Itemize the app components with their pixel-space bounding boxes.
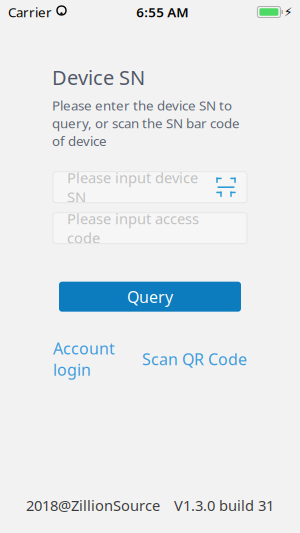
staticText: Account login — [53, 338, 115, 380]
staticText: V1.3.0 build 31 — [174, 495, 274, 515]
staticText: Please input device SN — [67, 168, 198, 207]
button[interactable]: Scan barcode — [213, 174, 239, 200]
staticText: Please input access code — [67, 209, 199, 248]
staticText: Please enter the device SN to query, or … — [52, 97, 240, 150]
staticText: Device SN — [52, 64, 145, 91]
staticText: Scan QR Code — [142, 348, 247, 369]
button[interactable]: Account login — [53, 338, 115, 380]
staticText: ⚡︎ — [284, 5, 292, 19]
staticText: 6:55 AM — [136, 3, 188, 21]
button[interactable]: Query — [59, 282, 241, 312]
button[interactable]: Scan QR Code — [142, 348, 247, 369]
staticText: Carrier — [8, 3, 52, 21]
staticText: 2018@ZillionSource — [26, 495, 160, 515]
staticText: Query — [127, 286, 173, 307]
